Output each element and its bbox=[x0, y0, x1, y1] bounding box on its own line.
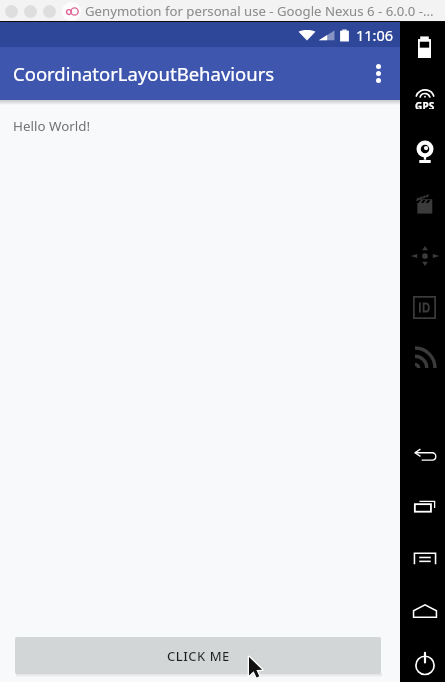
button[interactable]: More options bbox=[356, 47, 400, 100]
button[interactable]: GPS bbox=[410, 89, 440, 109]
button[interactable]: Recents bbox=[413, 500, 436, 513]
staticText: CLICK ME bbox=[167, 647, 230, 665]
button[interactable]: Network bbox=[415, 348, 435, 368]
staticText: 11:06 bbox=[356, 25, 394, 45]
button[interactable]: Record video bbox=[414, 193, 435, 214]
button[interactable]: CLICK ME bbox=[15, 637, 381, 674]
button[interactable]: Home bbox=[412, 604, 438, 618]
button[interactable]: Rotation bbox=[410, 245, 440, 267]
button[interactable]: Battery bbox=[418, 36, 431, 58]
staticText: Hello World! bbox=[13, 117, 91, 135]
staticText: GPS bbox=[415, 99, 435, 109]
button[interactable]: Back bbox=[413, 448, 437, 462]
button[interactable]: Identifiers bbox=[413, 296, 436, 319]
button[interactable]: Camera bbox=[414, 140, 436, 163]
button[interactable]: Power bbox=[413, 651, 437, 675]
staticText: Genymotion for personal use - Google Nex… bbox=[85, 2, 434, 20]
button[interactable]: Menu bbox=[413, 552, 437, 565]
staticText: CoordinatorLayoutBehaviours bbox=[13, 61, 275, 86]
